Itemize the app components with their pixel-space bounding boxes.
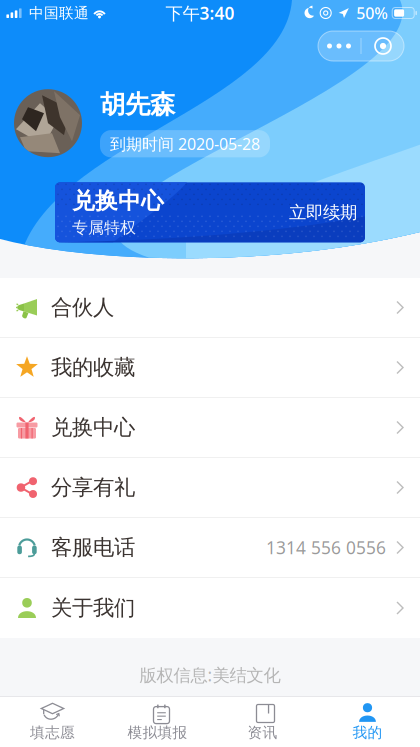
staticText: 立即续期 xyxy=(289,202,357,223)
staticText: 中国联通 xyxy=(29,4,89,22)
button[interactable]: 分享有礼 xyxy=(0,458,420,518)
button[interactable]: 填志愿 xyxy=(0,697,105,747)
staticText: 胡先森 xyxy=(100,89,175,120)
button[interactable]: 客服电话 xyxy=(0,518,420,578)
button[interactable]: 模拟填报 xyxy=(105,697,210,747)
button[interactable]: 合伙人 xyxy=(0,278,420,338)
staticText: 1314 556 0556 xyxy=(266,536,386,559)
staticText: 版权信息:美结文化 xyxy=(139,663,280,686)
staticText: 我的收藏 xyxy=(51,354,135,381)
staticText: 资讯 xyxy=(247,723,277,741)
button[interactable]: 我的收藏 xyxy=(0,338,420,398)
staticText: 我的 xyxy=(352,723,382,741)
button[interactable]: 我的 xyxy=(315,697,420,747)
staticText: 分享有礼 xyxy=(51,474,135,501)
staticText: 下午3:40 xyxy=(166,1,235,24)
staticText: 到期时间 2020-05-28 xyxy=(110,133,260,154)
button[interactable]: 资讯 xyxy=(210,697,315,747)
staticText: 模拟填报 xyxy=(127,723,187,741)
staticText: 合伙人 xyxy=(51,294,114,321)
staticText: 填志愿 xyxy=(30,723,75,741)
button[interactable]: 兑换中心 xyxy=(0,398,420,458)
staticText: 50% xyxy=(356,2,388,24)
button[interactable]: 兑换中心 xyxy=(55,182,365,242)
button[interactable]: More xyxy=(317,31,360,61)
staticText: 关于我们 xyxy=(51,595,135,621)
staticText: 兑换中心 xyxy=(51,414,135,441)
button[interactable]: Close xyxy=(361,31,404,61)
staticText: 专属特权 xyxy=(72,218,136,238)
staticText: 客服电话 xyxy=(51,534,135,561)
staticText: 兑换中心 xyxy=(72,187,164,215)
button[interactable]: 关于我们 xyxy=(0,578,420,638)
